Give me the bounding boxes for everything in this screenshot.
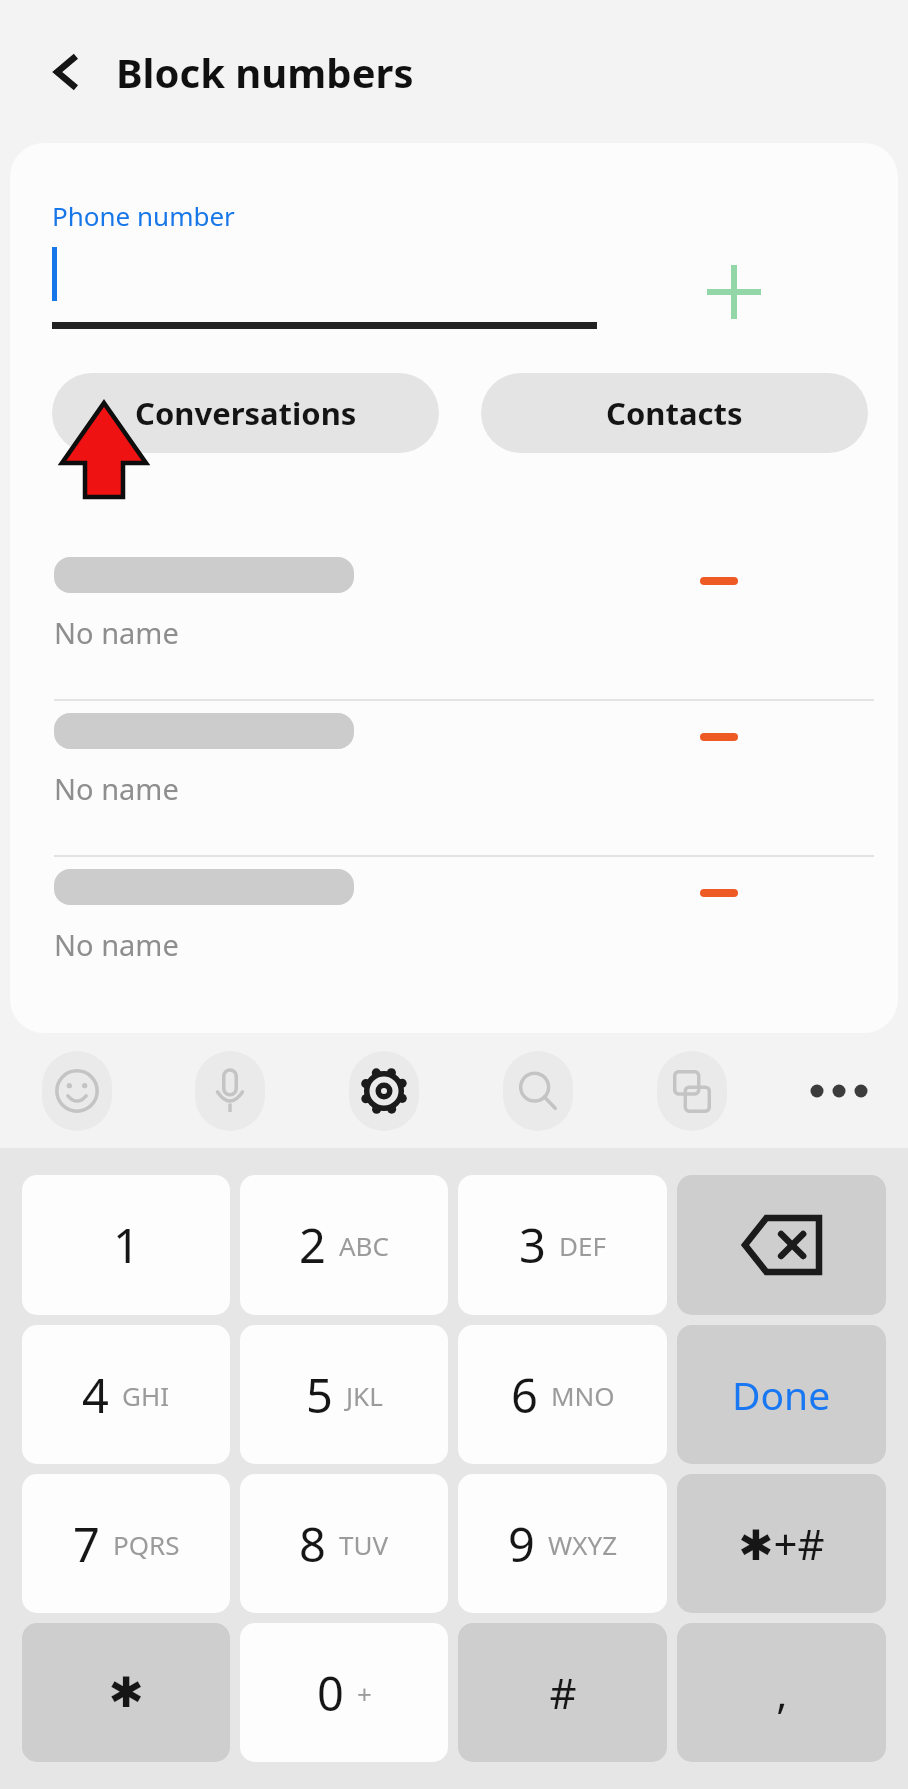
button[interactable]: Unblock number [700, 733, 738, 741]
button[interactable]: More options [769, 1033, 908, 1148]
button[interactable]: 2 [240, 1175, 448, 1315]
staticText: Phone number [52, 198, 235, 233]
staticText: No name [54, 925, 179, 964]
button[interactable]: Unblock number [700, 577, 738, 585]
staticText: , [776, 1664, 788, 1721]
staticText: JKL [346, 1378, 383, 1413]
button[interactable]: Keyboard settings [307, 1033, 461, 1148]
staticText: # [549, 1664, 577, 1721]
staticText: ✱ [108, 1668, 144, 1717]
button[interactable]: 6 [458, 1325, 667, 1464]
button[interactable]: No name [10, 545, 898, 701]
button[interactable]: 4 [22, 1325, 230, 1464]
button[interactable]: Done [677, 1325, 886, 1464]
staticText: PQRS [113, 1527, 180, 1562]
staticText: 3 [519, 1213, 546, 1277]
staticText: DEF [559, 1228, 606, 1263]
staticText: 4 [82, 1363, 109, 1427]
button[interactable]: Unblock number [700, 889, 738, 897]
button[interactable]: 7 [22, 1474, 230, 1613]
button[interactable]: 3 [458, 1175, 667, 1315]
staticText: ✱+# [738, 1515, 825, 1572]
staticText: TUV [339, 1527, 389, 1562]
staticText: Conversations [135, 392, 357, 434]
staticText: Block numbers [116, 45, 414, 99]
button[interactable]: Back [36, 40, 100, 104]
button[interactable]: Emoji [0, 1033, 153, 1148]
button[interactable]: No name [10, 701, 898, 857]
staticText: 9 [508, 1512, 535, 1576]
button[interactable]: 5 [240, 1325, 448, 1464]
staticText: 5 [306, 1363, 333, 1427]
button[interactable]: Conversations [52, 373, 439, 453]
staticText: WXYZ [548, 1527, 618, 1562]
staticText: 2 [299, 1213, 326, 1277]
button[interactable]: 8 [240, 1474, 448, 1613]
button[interactable]: Translate [615, 1033, 769, 1148]
button[interactable]: 1 [22, 1175, 230, 1315]
button[interactable]: , [677, 1623, 886, 1762]
button[interactable]: Contacts [481, 373, 868, 453]
staticText: GHI [122, 1378, 170, 1413]
staticText: 8 [299, 1512, 326, 1576]
staticText: No name [54, 613, 179, 652]
button[interactable]: Add number [597, 243, 898, 329]
staticText: Done [732, 1368, 831, 1421]
button[interactable]: # [458, 1623, 667, 1762]
button[interactable]: 9 [458, 1474, 667, 1613]
staticText: Contacts [606, 392, 743, 434]
button[interactable]: Voice input [153, 1033, 307, 1148]
staticText: 1 [113, 1213, 140, 1277]
staticText: No name [54, 769, 179, 808]
button[interactable]: Search [461, 1033, 615, 1148]
button[interactable]: No name [10, 857, 898, 1013]
button[interactable]: 0 [240, 1623, 448, 1762]
button[interactable]: ✱ [22, 1623, 230, 1762]
staticText: MNO [551, 1378, 615, 1413]
staticText: 6 [511, 1363, 538, 1427]
button[interactable]: Backspace [677, 1175, 886, 1315]
staticText: + [357, 1676, 372, 1711]
staticText: 0 [317, 1661, 344, 1725]
button[interactable]: ✱+# [677, 1474, 886, 1613]
staticText: ABC [339, 1228, 389, 1263]
staticText: 7 [73, 1512, 100, 1576]
